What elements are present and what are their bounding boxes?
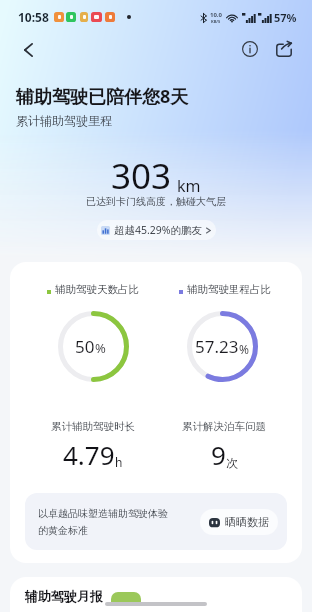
staticText: 10:58 [18,9,49,25]
staticText: 辅助驾驶天数占比 [55,283,139,296]
staticText: 辅助驾驶月报 [25,588,103,604]
staticText: 累计辅助驾驶里程 [16,113,112,128]
staticText: 辅助驾驶已陪伴您8天 [16,84,189,109]
button[interactable]: 超越45.29%的鹏友 [97,220,216,240]
button[interactable]: Info [237,36,263,62]
staticText: 已达到卡门线高度，触碰大气层 [0,195,312,208]
staticText: h [115,454,123,470]
staticText: 303 [111,152,172,200]
staticText: 累计解决泊车问题 [182,420,266,433]
staticText: 57% [274,10,297,25]
staticText: 超越45.29%的鹏友 [114,223,203,237]
staticText: KB/S [211,19,221,24]
staticText: 50 [75,335,95,358]
staticText: 57.23 [195,335,239,358]
button[interactable]: Share [271,36,297,62]
staticText: 10.0 [210,11,222,19]
staticText: km [177,175,201,197]
staticText: 晒晒数据 [225,515,269,529]
staticText: % [95,339,106,357]
staticText: 累计辅助驾驶时长 [51,420,135,433]
staticText: 辅助驾驶里程占比 [187,283,271,296]
staticText: 4.79 [63,437,115,472]
staticText: % [239,341,249,357]
staticText: 以卓越品味塑造辅助驾驶体验 的黄金标准 [38,507,168,537]
staticText: 9 [211,437,226,472]
staticText: 次 [226,455,238,470]
button[interactable]: Back [14,36,42,64]
button[interactable]: 晒晒数据 [200,509,278,535]
